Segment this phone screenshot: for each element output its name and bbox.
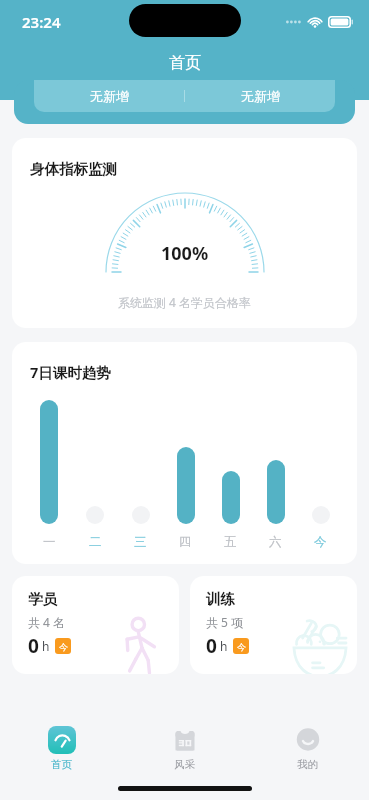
staticText: 一 [43,534,56,550]
staticText: 学员 [28,590,57,608]
button[interactable]: 无新增 [14,80,355,124]
staticText: h [220,638,228,654]
button[interactable]: 我的 [246,722,369,775]
button[interactable]: 首页 [0,722,123,775]
staticText: 训练 [206,590,235,608]
button[interactable]: 学员 [12,576,179,674]
staticText: 今 [314,534,327,550]
staticText: 首页 [51,758,72,771]
staticText: 0 [206,633,217,659]
staticText: 100% [161,241,209,266]
staticText: 身体指标监测 [30,160,117,178]
staticText: 四 [179,534,192,550]
button[interactable]: 7日课时趋势 [12,342,357,564]
staticText: 无新增 [90,88,129,104]
button[interactable]: 身体指标监测 [12,138,357,328]
button[interactable]: 训练 [190,576,357,674]
staticText: 我的 [297,758,318,771]
staticText: 二 [89,534,102,550]
staticText: 0 [28,633,39,659]
staticText: 7日课时趋势 [30,362,111,382]
staticText: 共 5 项 [206,614,244,630]
button[interactable]: 风采 [123,722,246,775]
staticText: 三 [134,534,147,550]
staticText: 今 [237,641,246,652]
staticText: 23:24 [22,12,61,32]
staticText: 首页 [169,53,201,73]
staticText: h [42,638,50,654]
staticText: 共 4 名 [28,614,66,630]
staticText: 无新增 [241,88,280,104]
staticText: 六 [269,534,282,550]
staticText: 今 [59,641,68,652]
staticText: 风采 [174,758,195,771]
staticText: 系统监测 4 名学员合格率 [118,294,252,310]
staticText: 五 [224,534,237,550]
